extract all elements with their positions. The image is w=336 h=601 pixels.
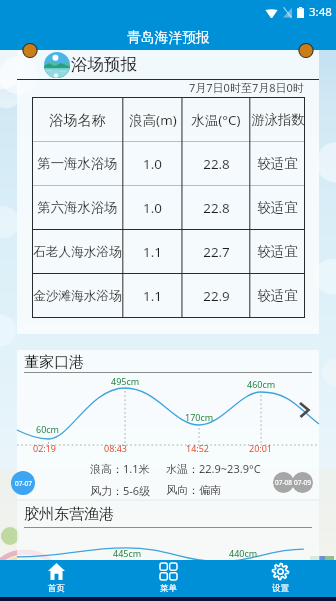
staticText: 董家口港	[24, 353, 84, 372]
staticText: 07-08	[275, 478, 292, 487]
button[interactable]: 设置 Settings	[224, 560, 336, 597]
staticText: 1.0	[143, 155, 162, 173]
staticText: 1.0	[143, 199, 162, 217]
staticText: 水温(°C)	[191, 111, 241, 129]
staticText: 460cm	[247, 378, 276, 390]
staticText: 第六海水浴场	[37, 199, 118, 216]
staticText: 440cm	[229, 547, 258, 559]
staticText: 风向：偏南	[166, 483, 221, 497]
staticText: 14:52	[186, 442, 210, 454]
staticText: 3:48	[309, 4, 332, 20]
staticText: 金沙滩海水浴场	[33, 288, 122, 304]
staticText: 石老人海水浴场	[33, 244, 122, 260]
staticText: 7月7日0时至7月8日0时	[189, 80, 304, 95]
staticText: 浴场预报	[71, 54, 137, 75]
staticText: 风力：5-6级	[90, 483, 151, 498]
staticText: 较适宜	[257, 199, 298, 216]
staticText: 游泳指数	[251, 111, 305, 128]
staticText: 22.8	[203, 199, 230, 217]
staticText: 07-09	[294, 478, 311, 487]
staticText: 22.7	[203, 243, 230, 261]
staticText: 22.8	[203, 155, 230, 173]
staticText: 02:19	[33, 442, 57, 454]
button[interactable]: 首页 Home	[0, 560, 112, 597]
staticText: 菜单	[160, 583, 177, 594]
staticText: 青岛海洋预报	[127, 29, 210, 46]
staticText: 20:01	[249, 442, 273, 454]
staticText: 首页	[48, 583, 65, 594]
button[interactable]: 07-07	[11, 471, 35, 495]
button[interactable]: 07-09	[292, 472, 313, 493]
staticText: 1.1	[143, 243, 162, 261]
staticText: 60cm	[36, 423, 60, 435]
staticText: 浪高：1.1米	[90, 461, 150, 476]
staticText: 较适宜	[257, 155, 298, 172]
staticText: 较适宜	[257, 243, 298, 260]
staticText: 浴场名称	[49, 111, 106, 129]
staticText: 22.9	[203, 287, 230, 305]
staticText: 水温：22.9~23.9°C	[166, 461, 261, 476]
staticText: 170cm	[185, 411, 214, 423]
staticText: 445cm	[113, 547, 142, 559]
button[interactable]: 07-08	[273, 472, 294, 493]
staticText: 07-07	[15, 479, 32, 488]
staticText: 浪高(m)	[129, 111, 177, 129]
button[interactable]: 菜单 Menu	[112, 560, 224, 597]
staticText: 1.1	[143, 287, 162, 305]
staticText: 08:43	[104, 442, 128, 454]
staticText: 胶州东营渔港	[24, 505, 114, 524]
staticText: 设置	[272, 583, 289, 594]
staticText: 第一海水浴场	[37, 155, 118, 172]
staticText: 较适宜	[257, 287, 298, 304]
staticText: 495cm	[111, 375, 140, 387]
